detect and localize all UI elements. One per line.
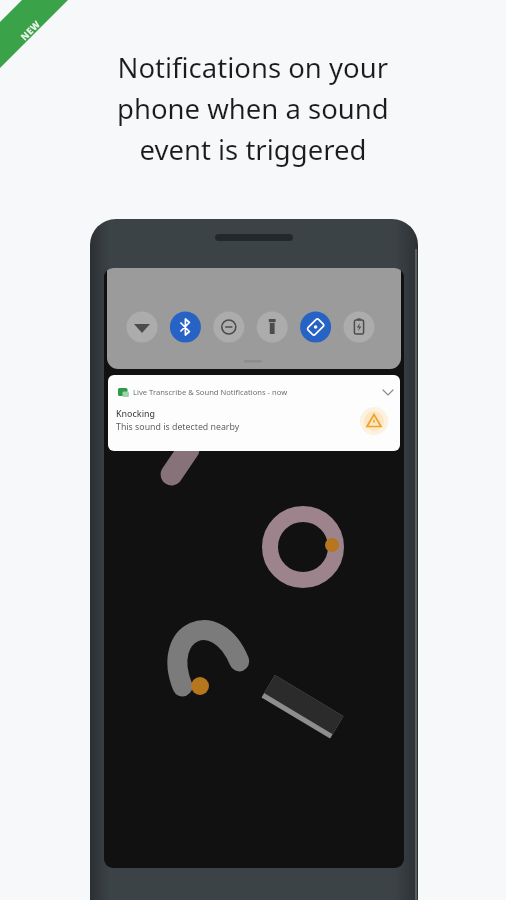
button[interactable]: Battery saver (343, 311, 375, 343)
button[interactable]: Do not disturb (213, 311, 245, 343)
button[interactable] (108, 375, 400, 451)
button[interactable]: Wi-Fi (126, 311, 158, 343)
button[interactable]: Auto-rotate (300, 311, 332, 343)
button[interactable]: Bluetooth (169, 311, 201, 343)
button[interactable]: Flashlight (256, 311, 288, 343)
